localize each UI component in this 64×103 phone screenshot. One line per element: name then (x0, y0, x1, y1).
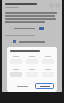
button[interactable] (35, 83, 54, 89)
button[interactable] (26, 56, 38, 64)
button[interactable]: Edit (49, 3, 53, 7)
button[interactable] (26, 69, 38, 77)
button[interactable]: More options (55, 3, 59, 7)
button[interactable] (42, 56, 54, 64)
button[interactable]: Checked (5, 40, 59, 43)
button[interactable] (5, 26, 59, 31)
button[interactable] (12, 83, 33, 89)
other: Checked (13, 40, 16, 43)
button[interactable] (42, 69, 54, 77)
button[interactable] (10, 69, 22, 77)
button[interactable] (10, 56, 22, 64)
